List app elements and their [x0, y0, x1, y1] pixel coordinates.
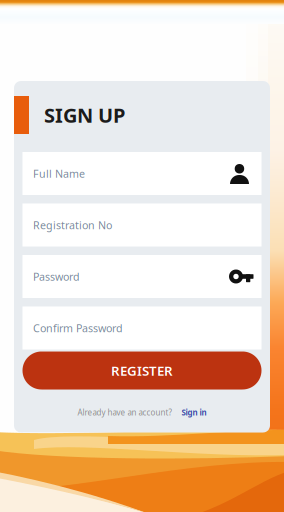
staticText: Sign in: [181, 407, 206, 418]
button[interactable]: REGISTER: [22, 351, 261, 389]
staticText: Registration No: [33, 218, 112, 232]
staticText: Full Name: [33, 166, 85, 181]
button[interactable]: Confirm Password: [22, 306, 261, 349]
staticText: Already have an account?: [77, 407, 171, 418]
staticText: SIGN UP: [44, 102, 125, 128]
staticText: Confirm Password: [33, 321, 123, 335]
staticText: Password: [33, 269, 80, 284]
button[interactable]: Full Name: [22, 152, 261, 195]
button[interactable]: Already have an account?: [14, 402, 270, 422]
staticText: REGISTER: [111, 362, 173, 379]
button[interactable]: Registration No: [22, 203, 261, 246]
button[interactable]: Password: [22, 255, 261, 298]
